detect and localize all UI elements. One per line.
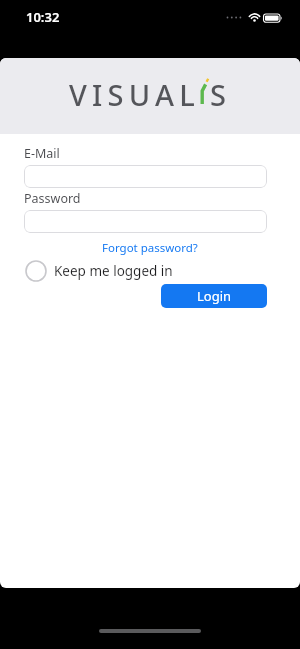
button[interactable]: Keep me logged in: [25, 260, 173, 282]
button[interactable]: Login: [161, 284, 267, 308]
staticText: Keep me logged in: [54, 262, 173, 280]
button[interactable]: Forgot password?: [102, 240, 198, 256]
staticText: VISUAL: [69, 75, 200, 114]
staticText: Forgot password?: [102, 240, 198, 256]
button[interactable]: [24, 210, 267, 233]
staticText: S: [210, 75, 232, 114]
staticText: Login: [197, 287, 232, 305]
staticText: E-Mail: [24, 145, 60, 162]
button[interactable]: [24, 165, 267, 188]
staticText: 10:32: [26, 8, 60, 26]
staticText: Password: [24, 190, 81, 207]
